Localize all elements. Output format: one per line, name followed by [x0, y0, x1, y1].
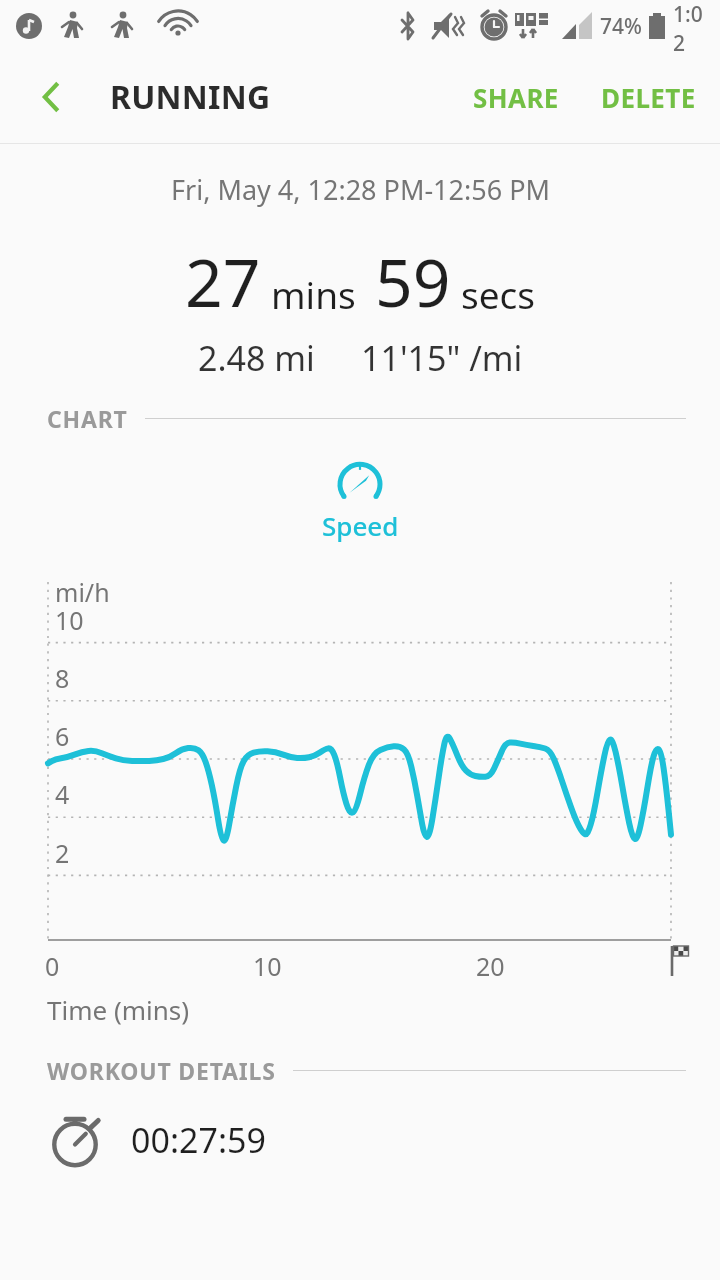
- staticText: CHART: [47, 403, 128, 434]
- staticText: 11'15" /mi: [361, 335, 523, 381]
- staticText: Fri, May 4, 12:28 PM-12:56 PM: [171, 171, 550, 208]
- staticText: 27: [185, 236, 261, 326]
- staticText: RUNNING: [110, 75, 271, 119]
- staticText: 10: [253, 949, 282, 983]
- staticText: Time (mins): [47, 992, 190, 1027]
- staticText: 8: [55, 661, 70, 695]
- staticText: 4: [55, 777, 70, 811]
- staticText: 6: [55, 719, 70, 753]
- button[interactable]: 00:27:59: [0, 1112, 720, 1168]
- staticText: DELETE: [601, 80, 696, 115]
- staticText: 00:27:59: [131, 1117, 266, 1163]
- button[interactable]: Speed: [0, 460, 720, 543]
- staticText: secs: [461, 269, 536, 319]
- staticText: mi/h: [55, 575, 110, 609]
- staticText: 0: [45, 949, 60, 983]
- staticText: 1:02 PM: [673, 0, 706, 52]
- staticText: WORKOUT DETAILS: [47, 1055, 276, 1086]
- button[interactable]: DELETE: [587, 64, 710, 131]
- staticText: SHARE: [473, 80, 559, 115]
- staticText: 2.48 mi: [198, 335, 315, 381]
- button[interactable]: SHARE: [459, 64, 573, 131]
- button[interactable]: Back: [22, 67, 82, 127]
- other: Speed: [335, 460, 385, 502]
- staticText: 2: [55, 836, 70, 870]
- staticText: 59: [375, 236, 451, 326]
- staticText: 20: [476, 949, 505, 983]
- staticText: Speed: [322, 508, 399, 543]
- staticText: 10: [55, 603, 84, 637]
- staticText: 74%: [600, 12, 642, 41]
- staticText: mins: [271, 269, 356, 319]
